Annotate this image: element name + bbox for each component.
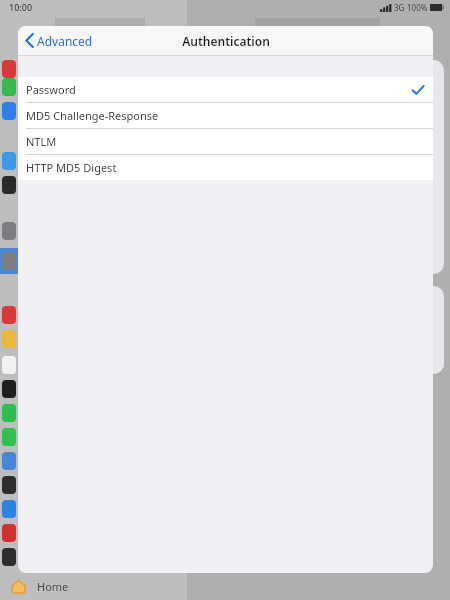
staticText: Password (26, 82, 76, 97)
button[interactable]: Advanced (18, 26, 101, 55)
staticText: HTTP MD5 Digest (26, 160, 117, 175)
button[interactable]: Password (18, 77, 433, 102)
button[interactable]: HTTP MD5 Digest (18, 154, 433, 180)
other: Home (10, 578, 27, 595)
button[interactable]: MD5 Challenge-Response (18, 102, 433, 128)
button[interactable]: Home (0, 573, 450, 600)
staticText: 10:00 (9, 1, 33, 13)
button[interactable]: NTLM (18, 128, 433, 154)
staticText: Authentication (182, 33, 270, 49)
staticText: NTLM (26, 134, 57, 149)
staticText: 100% (407, 2, 428, 13)
staticText: 3G (394, 2, 405, 13)
staticText: MD5 Challenge-Response (26, 108, 159, 123)
staticText: Advanced (37, 33, 93, 49)
staticText: Home (37, 579, 69, 594)
